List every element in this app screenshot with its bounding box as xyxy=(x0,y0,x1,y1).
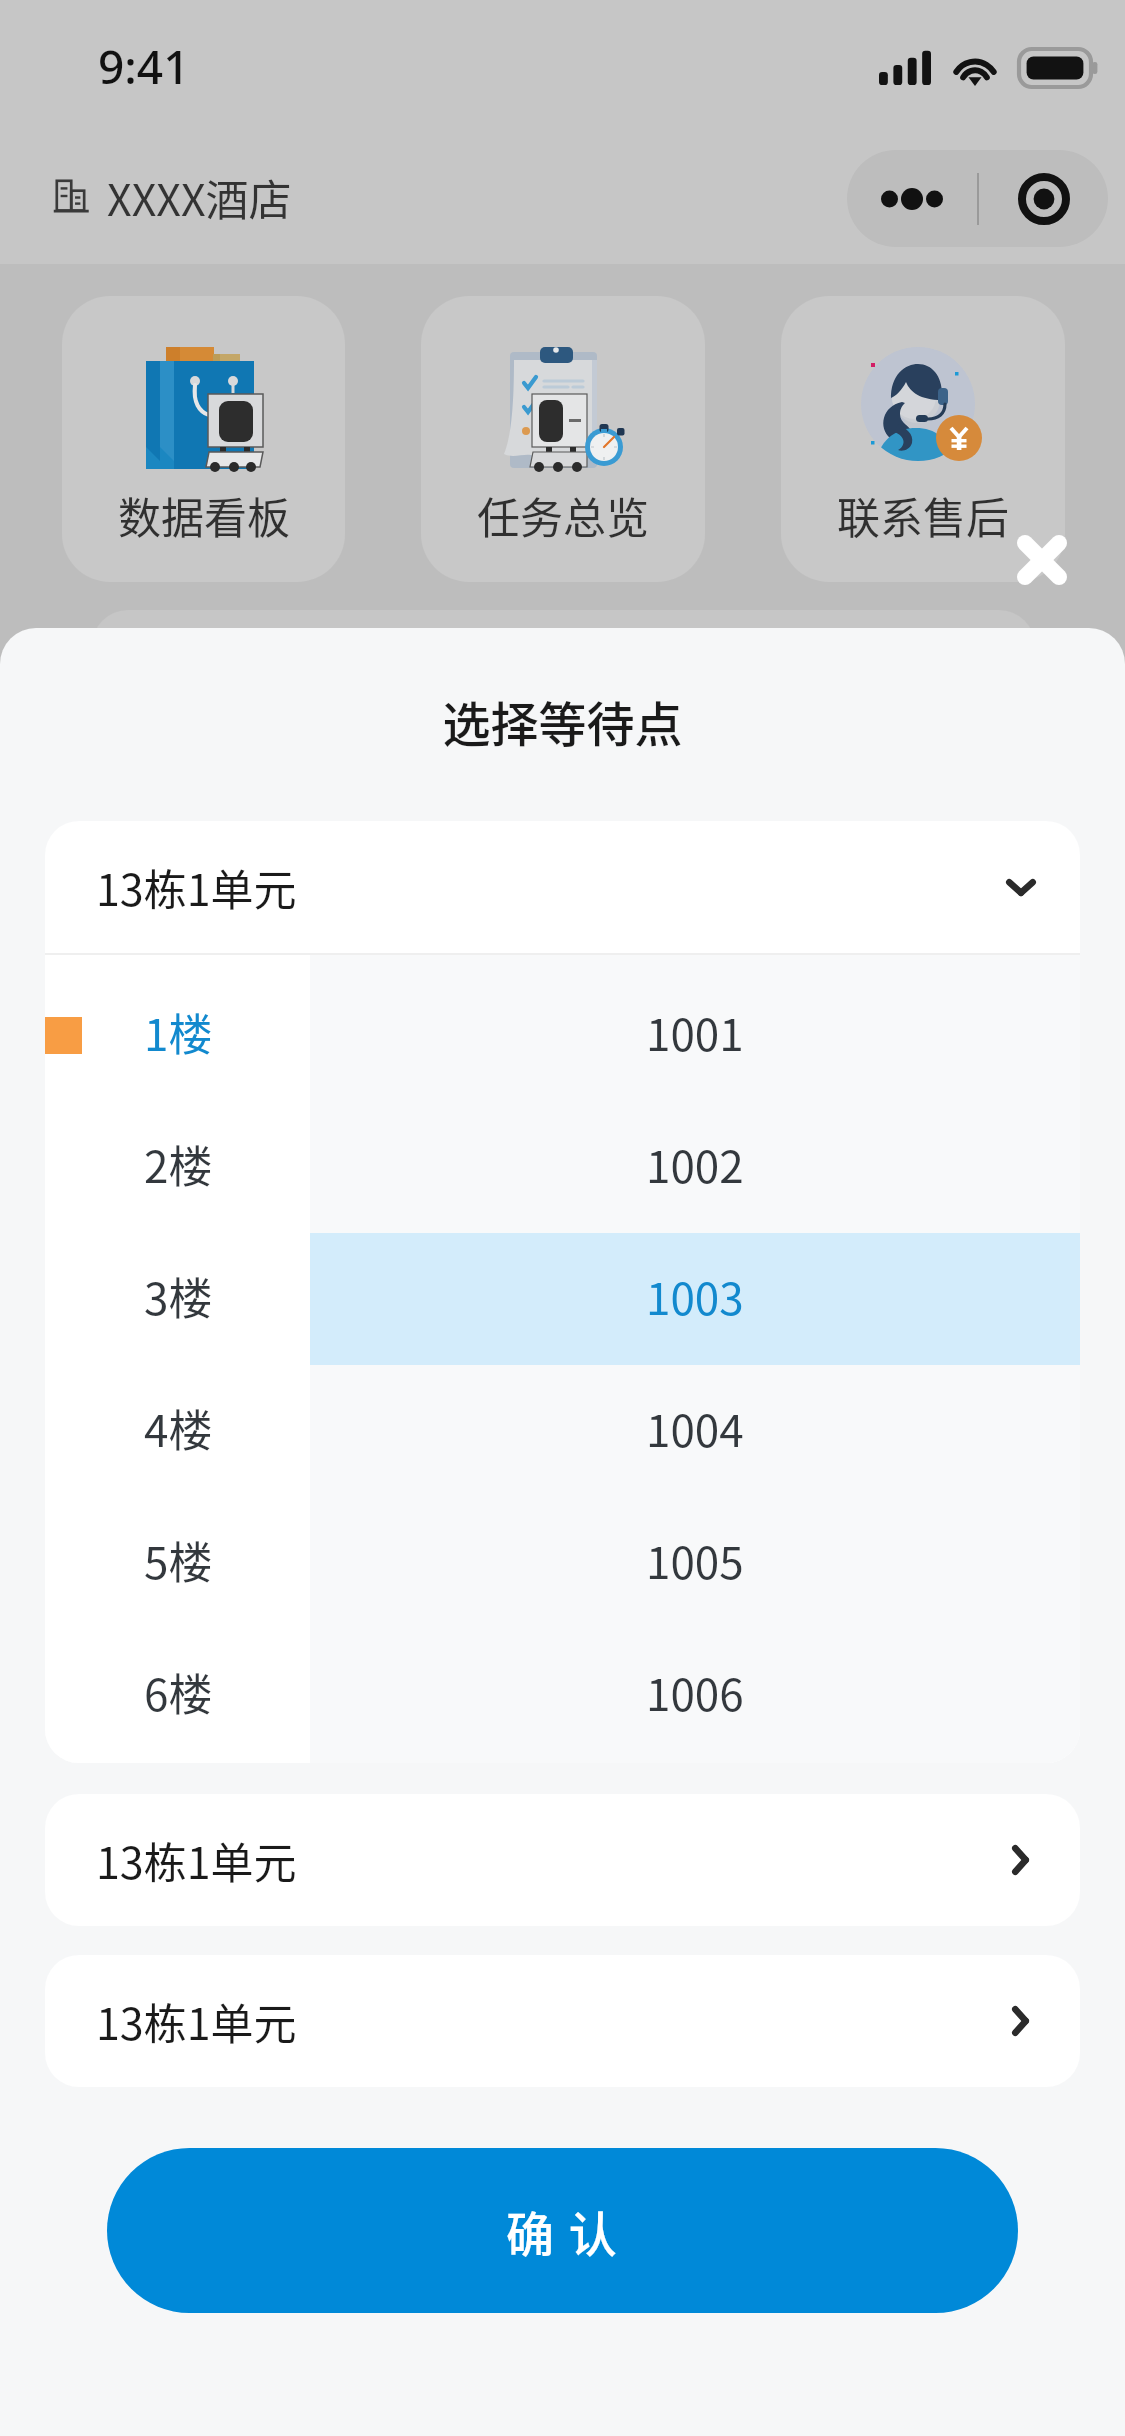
staticText: 1004 xyxy=(646,1396,744,1460)
staticText: 2楼 xyxy=(144,1132,213,1196)
button[interactable]: Close mini program xyxy=(979,150,1108,247)
button[interactable]: 4楼 xyxy=(45,1365,310,1497)
button[interactable]: More options xyxy=(847,150,977,247)
staticText: 1楼 xyxy=(144,1000,213,1064)
button[interactable]: 1005 xyxy=(310,1497,1080,1629)
button[interactable]: 3楼 xyxy=(45,1233,310,1365)
staticText: 4楼 xyxy=(144,1396,213,1460)
button[interactable]: 数据看板 xyxy=(62,296,345,582)
staticText: 联系售后 xyxy=(837,484,1009,546)
button[interactable]: 1001 xyxy=(310,969,1080,1101)
button[interactable]: 1楼 xyxy=(45,969,310,1101)
button[interactable]: 联系售后 xyxy=(781,296,1065,582)
button[interactable]: 1002 xyxy=(310,1101,1080,1233)
button[interactable]: 1004 xyxy=(310,1365,1080,1497)
staticText: 13栋1单元 xyxy=(96,1829,297,1891)
staticText: XXXX酒店 xyxy=(107,166,292,228)
button[interactable]: Close xyxy=(982,500,1102,620)
staticText: 选择等待点 xyxy=(0,686,1125,756)
button[interactable]: 确 认 xyxy=(107,2148,1018,2313)
staticText: 1003 xyxy=(646,1264,744,1328)
staticText: 3楼 xyxy=(144,1264,213,1328)
button[interactable]: 任务总览 xyxy=(421,296,705,582)
staticText: 数据看板 xyxy=(118,484,290,546)
staticText: 1001 xyxy=(646,1000,744,1064)
staticText: 1002 xyxy=(646,1132,744,1196)
button[interactable]: 2楼 xyxy=(45,1101,310,1233)
staticText: 9:41 xyxy=(98,35,190,98)
staticText: 1005 xyxy=(646,1528,744,1592)
button[interactable]: 1003 xyxy=(310,1233,1080,1365)
button[interactable]: 1006 xyxy=(310,1629,1080,1761)
staticText: 13栋1单元 xyxy=(96,1990,297,2052)
staticText: 5楼 xyxy=(144,1528,213,1592)
button[interactable]: 13栋1单元 xyxy=(45,1955,1080,2087)
button[interactable]: 5楼 xyxy=(45,1497,310,1629)
staticText: 13栋1单元 xyxy=(96,856,297,918)
staticText: 6楼 xyxy=(144,1660,213,1724)
staticText: 1006 xyxy=(646,1660,744,1724)
staticText: 确 认 xyxy=(506,2196,619,2266)
button[interactable]: 13栋1单元 xyxy=(45,821,1080,953)
button[interactable]: 13栋1单元 xyxy=(45,1794,1080,1926)
staticText: 任务总览 xyxy=(477,484,649,546)
button[interactable]: 6楼 xyxy=(45,1629,310,1761)
